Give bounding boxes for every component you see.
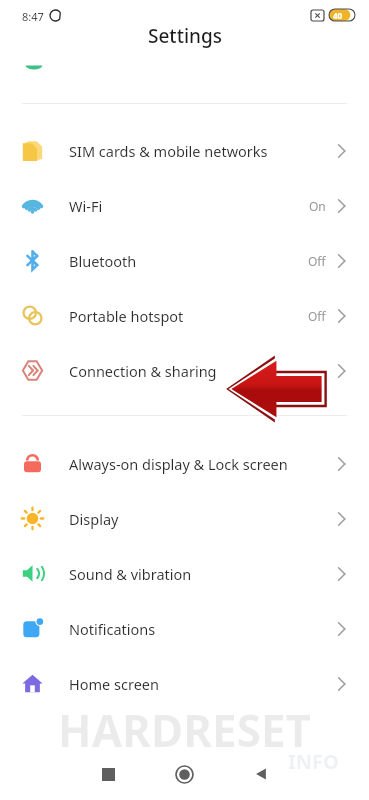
button[interactable] — [0, 60, 369, 90]
staticText: INFO — [288, 748, 339, 775]
button[interactable]: Back — [241, 754, 281, 794]
button[interactable]: SIM cards & mobile networks — [0, 123, 369, 178]
button[interactable]: Always-on display & Lock screen — [0, 436, 369, 491]
staticText: Off — [308, 308, 326, 324]
staticText: Home screen — [69, 674, 159, 694]
button[interactable]: Connection & sharing — [0, 343, 369, 398]
staticText: Bluetooth — [69, 251, 137, 271]
staticText: Notifications — [69, 619, 156, 639]
staticText: On — [309, 198, 326, 214]
staticText: Always-on display & Lock screen — [69, 454, 288, 474]
staticText: Settings — [148, 23, 222, 49]
button[interactable]: Portable hotspot — [0, 288, 369, 343]
button[interactable]: Bluetooth — [0, 233, 369, 288]
button[interactable]: Home — [164, 754, 204, 794]
staticText: HARDRESET — [58, 700, 311, 760]
button[interactable]: Wi-Fi — [0, 178, 369, 233]
button[interactable]: Display — [0, 491, 369, 546]
button[interactable]: Notifications — [0, 601, 369, 656]
staticText: Off — [308, 253, 326, 269]
button[interactable]: Sound & vibration — [0, 546, 369, 601]
button[interactable]: Recents — [88, 754, 128, 794]
staticText: Connection & sharing — [69, 361, 217, 381]
staticText: 40 — [333, 10, 343, 21]
staticText: Portable hotspot — [69, 306, 184, 326]
button[interactable]: Home screen — [0, 656, 369, 711]
staticText: Wi-Fi — [69, 196, 103, 216]
staticText: SIM cards & mobile networks — [69, 141, 268, 161]
staticText: Display — [69, 509, 119, 529]
staticText: Sound & vibration — [69, 564, 192, 584]
staticText: 8:47 — [22, 9, 44, 24]
